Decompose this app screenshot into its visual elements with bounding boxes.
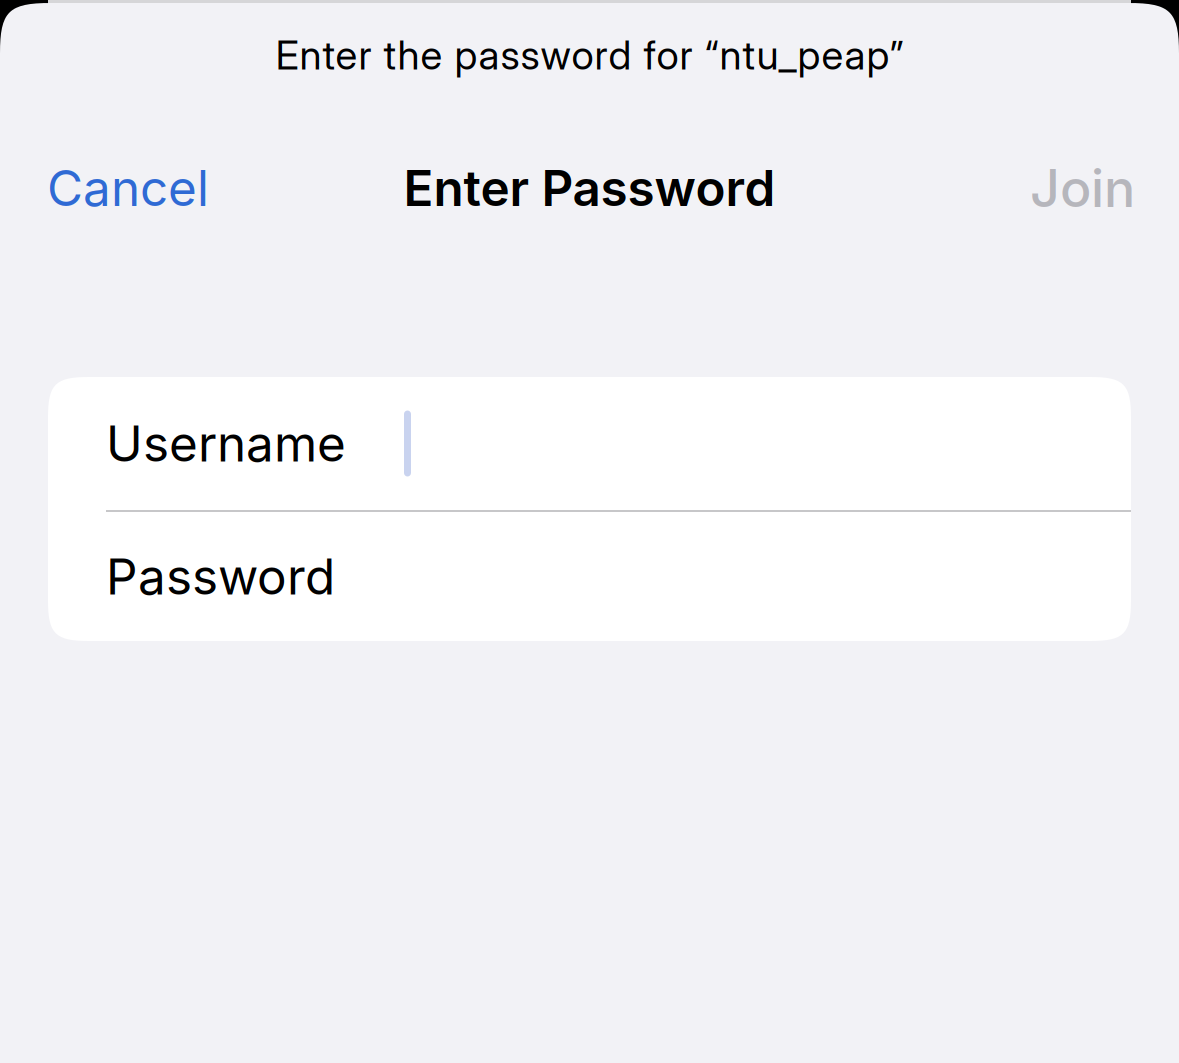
staticText: Enter the password for “ntu_peap”	[275, 31, 903, 79]
staticText: Cancel	[47, 158, 209, 218]
button[interactable]: Password	[48, 512, 1131, 641]
staticText: Username	[106, 414, 346, 473]
staticText: Join	[1030, 156, 1135, 219]
button[interactable]: Cancel	[33, 136, 223, 240]
staticText: Enter Password	[403, 158, 775, 218]
button[interactable]: Username	[48, 377, 1131, 510]
button[interactable]: Join	[1016, 134, 1149, 241]
staticText: Password	[106, 547, 335, 606]
